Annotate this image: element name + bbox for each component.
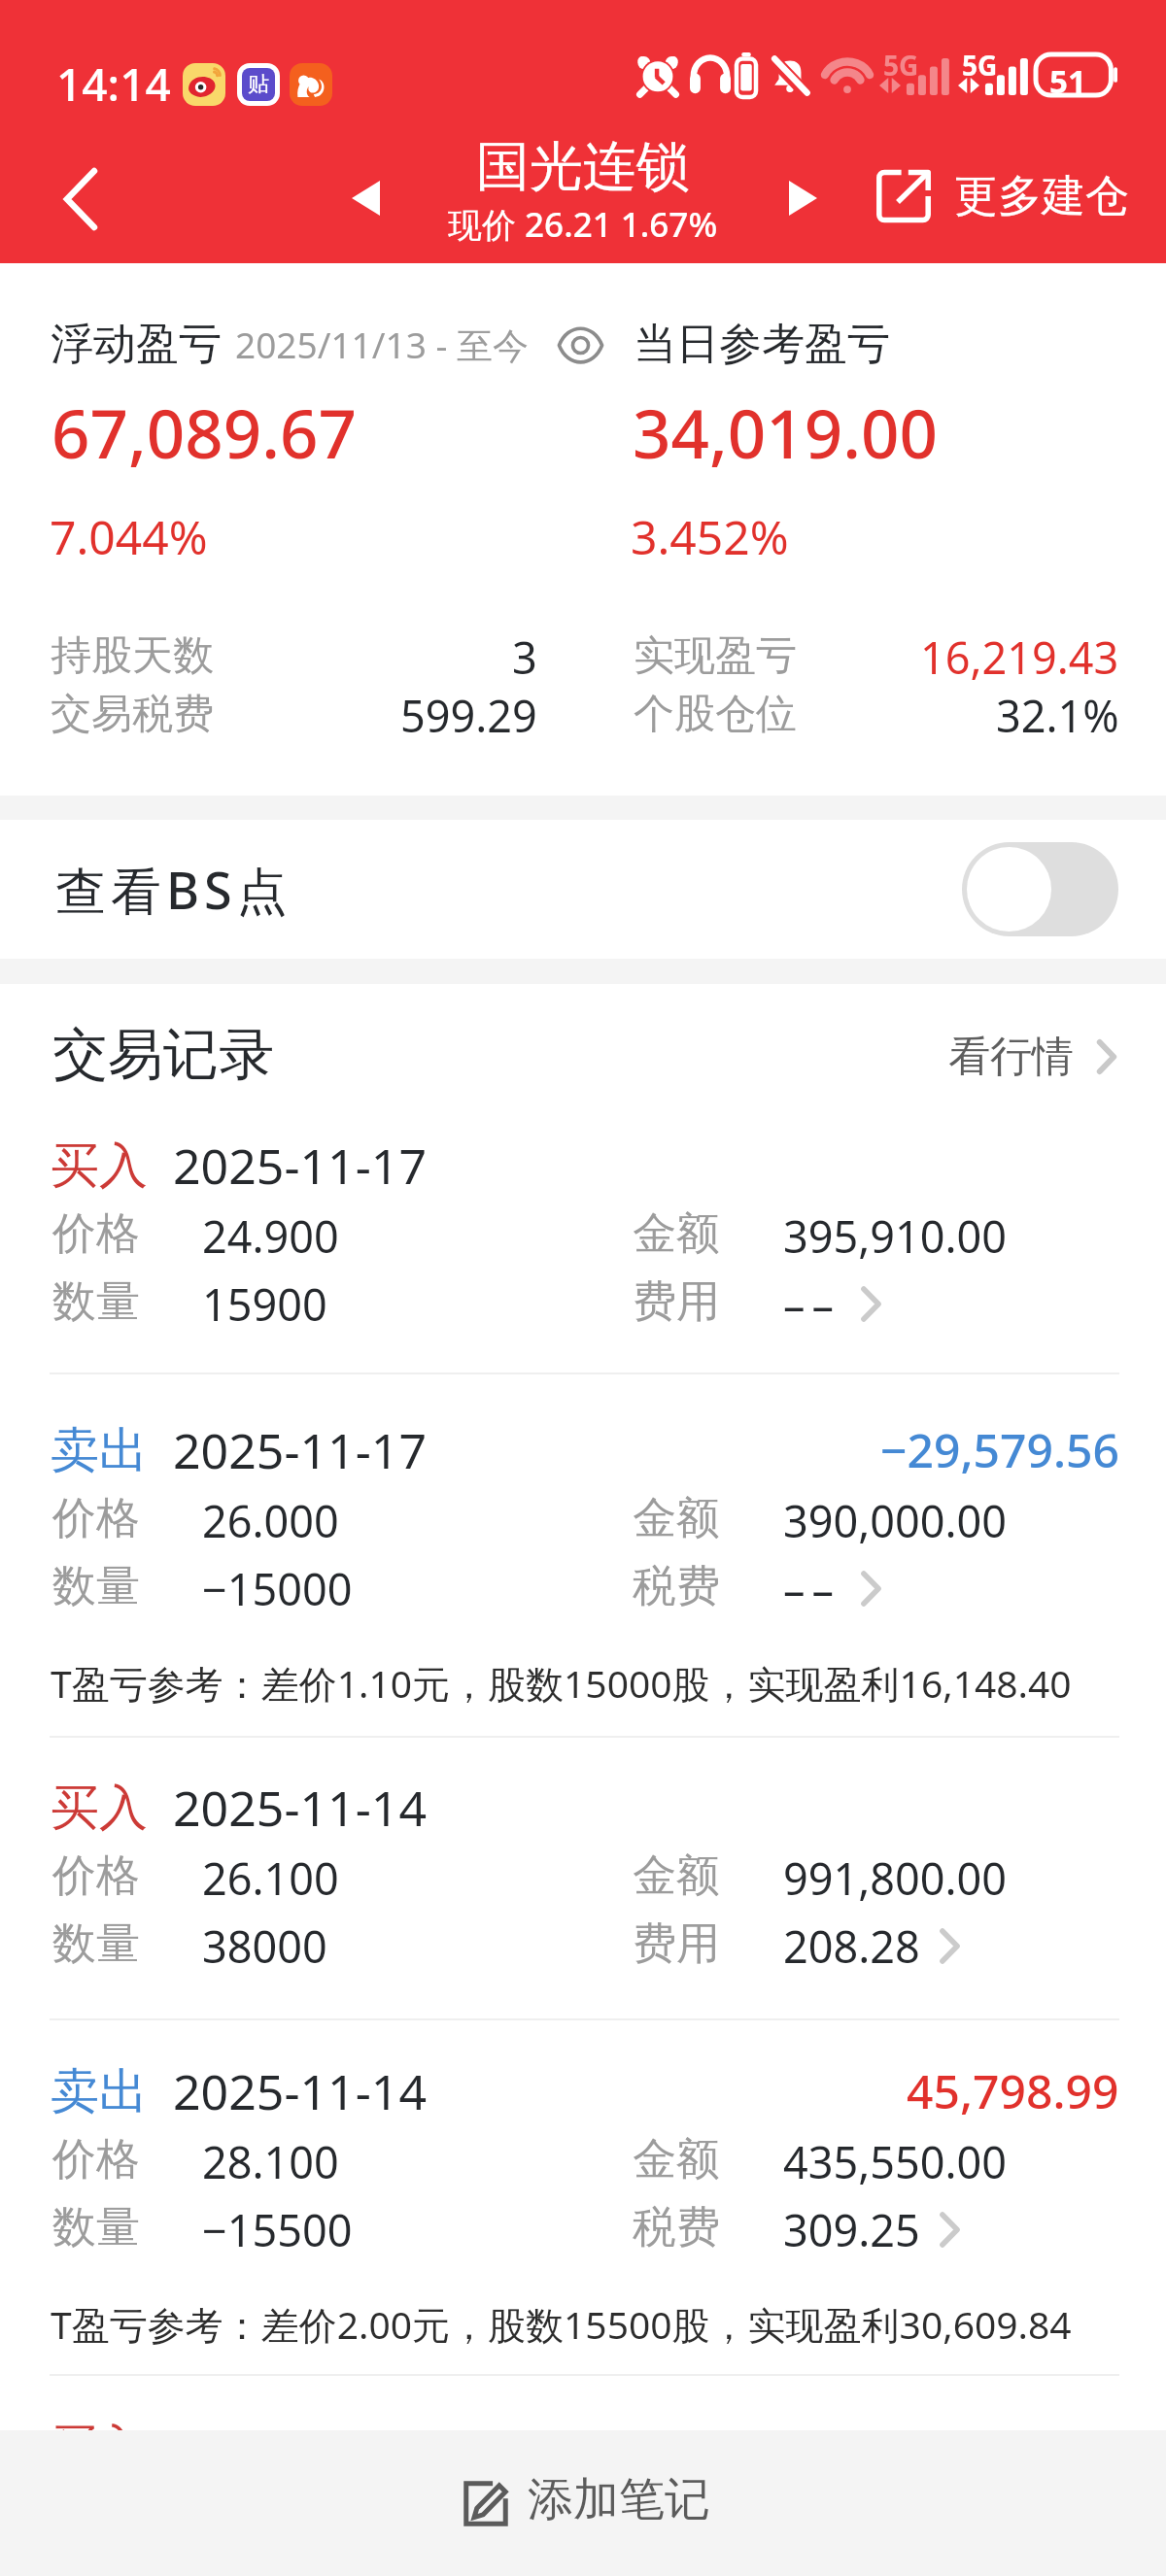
staticText: 5G [883, 47, 919, 84]
staticText: 14:14 [56, 53, 171, 115]
staticText: 实现盈亏 [634, 630, 797, 682]
staticText: 991,800.00 [783, 1848, 1008, 1908]
button[interactable]: 看行情 [933, 1020, 1145, 1094]
button[interactable]: Back [27, 146, 134, 253]
staticText: 现价 26.21 1.67% [448, 201, 718, 248]
staticText: 3.452% [631, 505, 789, 568]
staticText: 费用 [633, 1274, 720, 1330]
staticText: 28.100 [202, 2132, 339, 2191]
staticText: 数量 [52, 1274, 140, 1330]
staticText: 查看BS点 [55, 855, 292, 924]
staticText: 价格 [52, 1848, 140, 1904]
button[interactable]: 卖出 [0, 1387, 1166, 1736]
staticText: 买入 [51, 2418, 144, 2476]
staticText: –– [783, 1559, 841, 1618]
button[interactable]: Show BS points [962, 842, 1118, 936]
button[interactable]: 交易记录 [39, 1003, 288, 1106]
staticText: 更多建仓 [954, 169, 1129, 224]
button[interactable]: Previous stock [322, 154, 409, 242]
staticText: −15000 [202, 1559, 353, 1618]
staticText: 599.29 [400, 686, 537, 742]
staticText: 个股仓位 [634, 689, 797, 740]
staticText: 5G [962, 47, 998, 84]
staticText: 卖出 [51, 2061, 148, 2122]
staticText: 价格 [52, 2132, 140, 2187]
staticText: 国光连锁 [476, 133, 690, 200]
staticText: 435,550.00 [783, 2132, 1008, 2191]
button[interactable]: 添加笔记 [0, 2430, 1166, 2576]
staticText: 看行情 [948, 1031, 1074, 1083]
staticText: 数量 [52, 1916, 140, 1972]
staticText: 税费 [633, 2200, 720, 2255]
staticText: 38000 [202, 1916, 327, 1976]
button[interactable]: 卖出 [0, 2028, 1166, 2374]
staticText: 数量 [52, 1559, 140, 1614]
staticText: 费用 [633, 1916, 720, 1972]
staticText: –– [783, 1274, 841, 1334]
staticText: 数量 [52, 2200, 140, 2255]
staticText: 7.044% [50, 505, 208, 568]
staticText: 贴 [248, 71, 269, 98]
staticText: 买入 [51, 1778, 148, 1839]
staticText: 32.1% [996, 686, 1119, 742]
button[interactable]: Next stock [759, 154, 846, 242]
staticText: T盈亏参考：差价1.10元，股数15000股，实现盈利16,148.40 [51, 1657, 1072, 1709]
staticText: 卖出 [51, 1420, 148, 1481]
staticText: 交易记录 [52, 1020, 274, 1090]
button[interactable]: 买入 [0, 1102, 1166, 1373]
staticText: 26.100 [202, 1848, 339, 1908]
staticText: 2025-11-14 [173, 2058, 427, 2124]
staticText: 2025-11-13 [171, 2415, 415, 2478]
staticText: −29,579.56 [880, 1418, 1119, 1481]
staticText: 3 [512, 627, 537, 684]
staticText: 买入 [51, 1135, 148, 1197]
staticText: 2025-11-14 [173, 1775, 427, 1841]
staticText: 395,910.00 [783, 1206, 1008, 1266]
staticText: 2025-11-17 [173, 1417, 427, 1483]
staticText: T盈亏参考：差价2.00元，股数15500股，实现盈利30,609.84 [51, 2298, 1072, 2350]
staticText: 26.000 [202, 1491, 339, 1550]
staticText: 持股天数 [51, 630, 214, 682]
staticText: 309.25 [783, 2200, 920, 2259]
button[interactable]: 更多建仓 [861, 153, 1143, 239]
button[interactable]: 查看BS点 [0, 820, 1166, 959]
staticText: 16,219.43 [920, 627, 1119, 684]
staticText: 交易税费 [51, 689, 214, 740]
button[interactable]: Toggle amount visibility [550, 320, 610, 370]
staticText: 金额 [633, 1491, 720, 1546]
staticText: 2025-11-17 [173, 1133, 427, 1199]
staticText: 价格 [52, 1491, 140, 1546]
staticText: 24.900 [202, 1206, 339, 1266]
staticText: 15900 [202, 1274, 327, 1334]
staticText: 金额 [633, 1848, 720, 1904]
staticText: 当日参考盈亏 [634, 318, 890, 371]
staticText: 价格 [52, 1206, 140, 1262]
staticText: 208.28 [783, 1916, 920, 1976]
staticText: 浮动盈亏 [51, 318, 222, 371]
staticText: 添加笔记 [528, 2471, 710, 2528]
staticText: 390,000.00 [783, 1491, 1008, 1550]
staticText: −15500 [202, 2200, 353, 2259]
staticText: 34,019.00 [633, 387, 938, 478]
staticText: 税费 [633, 1559, 720, 1614]
staticText: 67,089.67 [51, 387, 357, 478]
staticText: 2025/11/13 - 至今 [235, 320, 529, 369]
staticText: 51 [1049, 59, 1086, 103]
staticText: 金额 [633, 1206, 720, 1262]
button[interactable]: 买入 [0, 1745, 1166, 2018]
staticText: 45,798.99 [907, 2059, 1119, 2122]
staticText: 金额 [633, 2132, 720, 2187]
